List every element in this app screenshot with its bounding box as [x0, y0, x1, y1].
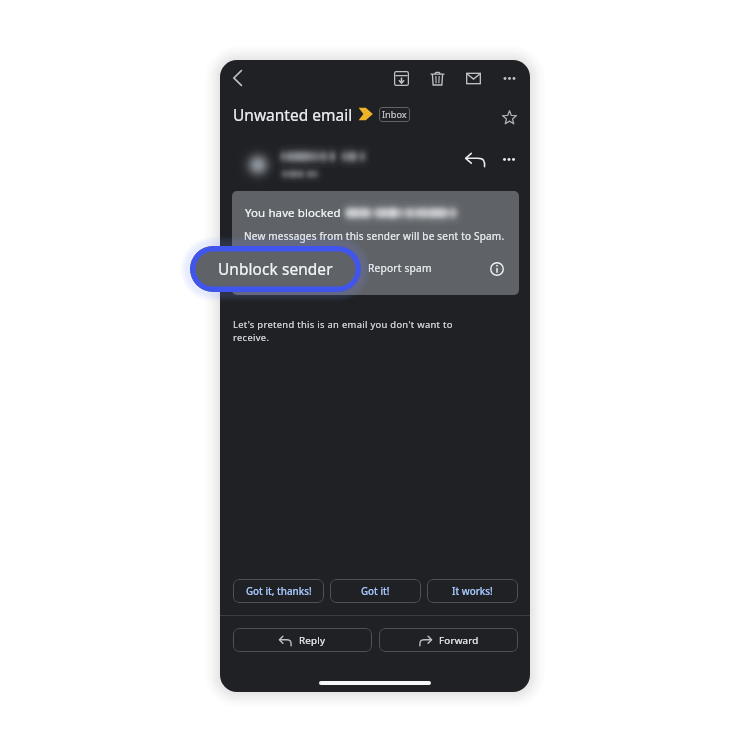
- staticText: Unblock sender: [218, 259, 333, 280]
- staticText: Forward: [439, 634, 479, 647]
- staticText: You have blocked: [245, 205, 341, 221]
- staticText: It works!: [452, 585, 493, 598]
- button[interactable]: Reply: [233, 628, 372, 652]
- staticText: Unwanted email: [233, 104, 353, 125]
- button[interactable]: Inbox: [379, 107, 410, 122]
- staticText: New messages from this sender will be se…: [244, 229, 505, 243]
- button[interactable]: Report spam: [360, 247, 440, 289]
- staticText: Inbox: [382, 108, 407, 121]
- button[interactable]: More info: [481, 253, 513, 285]
- staticText: Got it, thanks!: [246, 585, 312, 598]
- button[interactable]: Reply: [463, 147, 488, 172]
- button[interactable]: It works!: [427, 579, 518, 603]
- button[interactable]: Archive: [388, 65, 414, 91]
- button[interactable]: More options: [497, 147, 521, 171]
- staticText: Report spam: [368, 261, 432, 275]
- button[interactable]: More options: [496, 65, 522, 91]
- staticText: Reply: [299, 634, 326, 647]
- staticText: Let's pretend this is an email you don't…: [233, 318, 453, 344]
- button[interactable]: Forward: [379, 628, 518, 652]
- button[interactable]: Got it, thanks!: [233, 579, 324, 603]
- button[interactable]: Got it!: [330, 579, 421, 603]
- button[interactable]: Back: [224, 65, 250, 91]
- button[interactable]: Delete: [424, 65, 450, 91]
- button[interactable]: Star: [497, 105, 521, 129]
- staticText: Got it!: [361, 585, 390, 598]
- button[interactable]: Mark as unread: [460, 65, 486, 91]
- button[interactable]: Unblock sender: [190, 246, 361, 292]
